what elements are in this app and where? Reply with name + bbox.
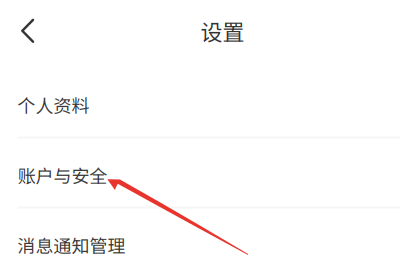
button[interactable]: Back (0, 8, 48, 53)
staticText: 设置 (200, 15, 244, 47)
staticText: 个人资料 (17, 92, 89, 118)
staticText: 账户与安全 (17, 162, 107, 188)
button[interactable]: 消息通知管理 (0, 208, 400, 256)
button[interactable]: 个人资料 (0, 68, 400, 138)
button[interactable]: 账户与安全 (0, 138, 400, 208)
staticText: 消息通知管理 (17, 232, 125, 256)
